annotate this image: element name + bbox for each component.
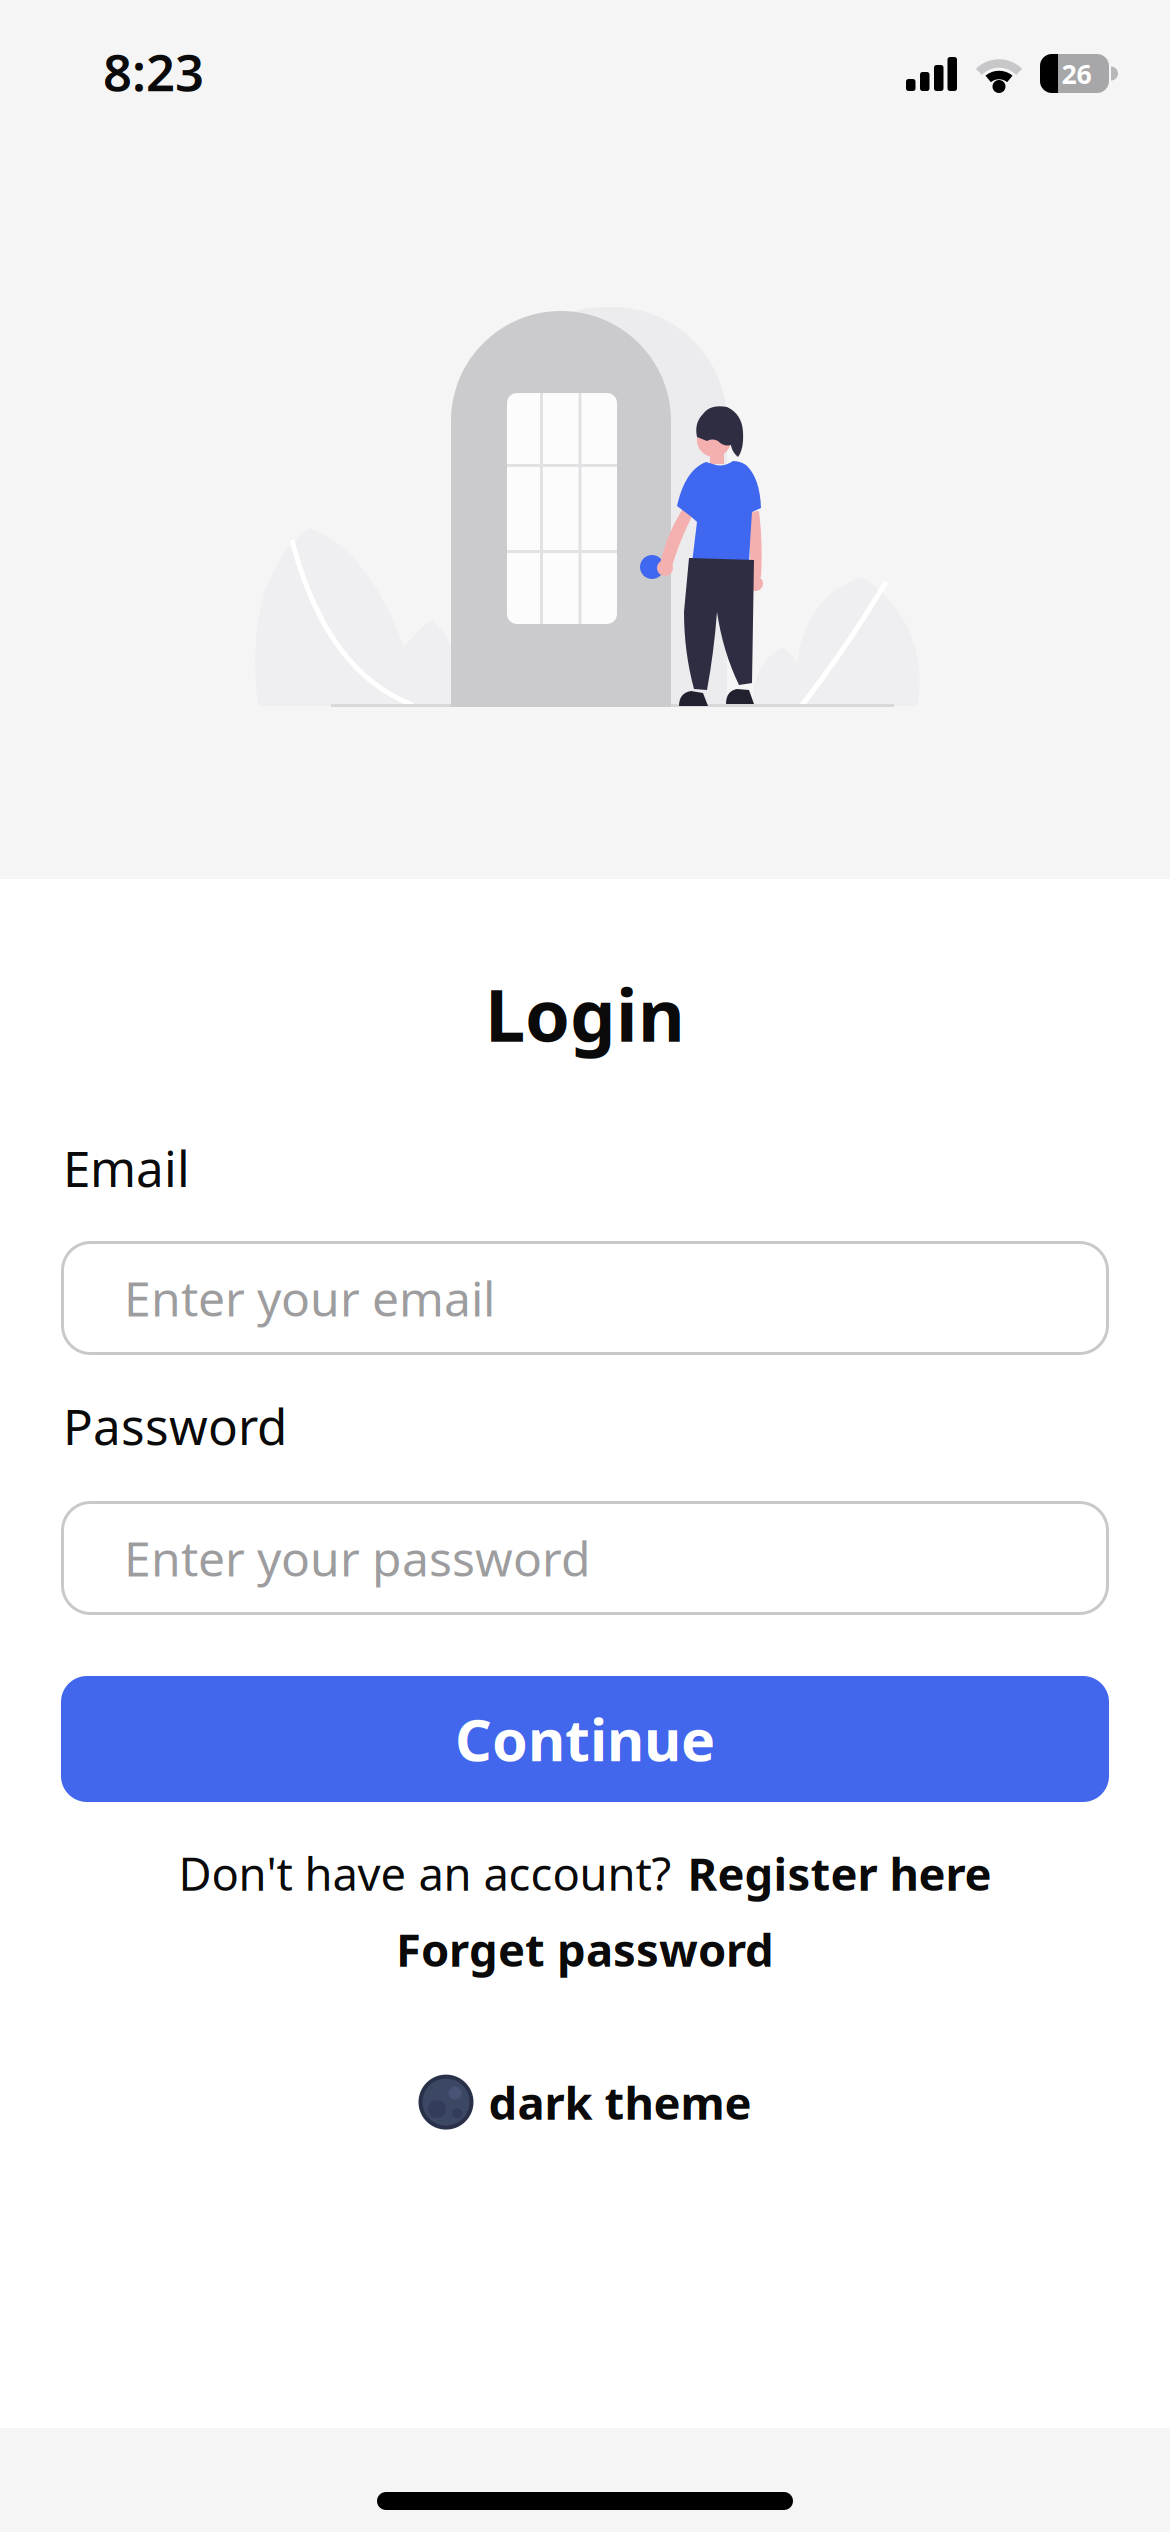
staticText: Login [485, 966, 685, 1062]
button[interactable]: Register here [687, 1843, 991, 1903]
staticText: 8:23 [103, 38, 204, 105]
staticText: dark theme [488, 2072, 751, 2132]
staticText: Register here [687, 1843, 991, 1903]
button[interactable]: Enter your password [61, 1501, 1109, 1615]
staticText: Enter your email [124, 1266, 495, 1330]
staticText: 26 [1061, 56, 1091, 91]
button[interactable]: Enter your email [61, 1241, 1109, 1355]
staticText: Enter your password [124, 1526, 591, 1590]
button[interactable]: Forget password [396, 1919, 774, 1979]
staticText: Don't have an account? [178, 1843, 671, 1903]
button[interactable]: dark theme [418, 2072, 751, 2132]
staticText: Email [63, 1135, 190, 1200]
staticText: Forget password [396, 1919, 774, 1979]
staticText: Continue [455, 1701, 715, 1777]
staticText: Password [63, 1393, 287, 1458]
button[interactable]: Continue [61, 1676, 1109, 1802]
